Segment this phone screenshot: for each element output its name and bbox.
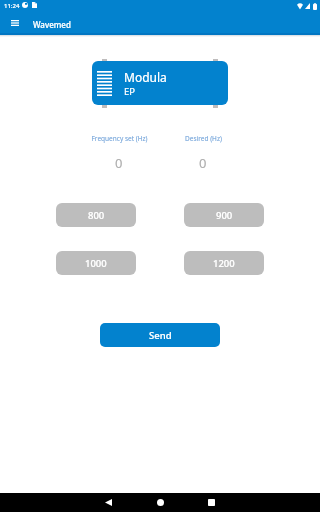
button[interactable]: 800 <box>56 203 136 227</box>
staticText: Frequency set (Hz) <box>91 134 148 143</box>
staticText: Send <box>149 329 172 342</box>
staticText: 1200 <box>213 257 235 270</box>
button[interactable]: Recent apps <box>198 493 224 512</box>
button[interactable]: 900 <box>184 203 264 227</box>
staticText: 900 <box>216 209 233 222</box>
staticText: 800 <box>88 209 105 222</box>
button[interactable]: Open navigation menu <box>3 14 26 35</box>
staticText: 0 <box>199 154 207 172</box>
staticText: Desired (Hz) <box>185 134 222 143</box>
button[interactable]: Modula <box>92 61 228 105</box>
button[interactable]: 1000 <box>56 251 136 275</box>
staticText: 11:24 <box>4 2 20 10</box>
staticText: EP <box>124 85 136 98</box>
staticText: 1000 <box>85 257 107 270</box>
button[interactable]: Back <box>95 493 121 512</box>
staticText: Modula <box>124 69 167 85</box>
button[interactable]: Home <box>147 493 173 512</box>
button[interactable]: 1200 <box>184 251 264 275</box>
button[interactable]: Send <box>100 323 220 347</box>
staticText: Wavemed <box>33 19 71 30</box>
staticText: 0 <box>115 154 123 172</box>
